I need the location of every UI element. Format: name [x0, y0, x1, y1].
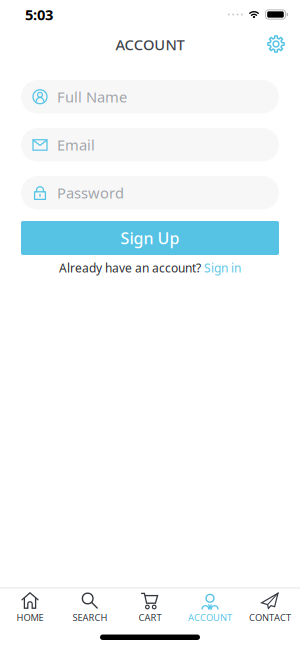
staticText: ACCOUNT [115, 35, 185, 54]
staticText: CONTACT [249, 611, 291, 624]
button[interactable]: HOME [0, 591, 60, 624]
button[interactable]: CONTACT [240, 591, 300, 624]
button[interactable]: ACCOUNT [180, 591, 240, 624]
staticText: SEARCH [72, 611, 107, 624]
staticText: Already have an account? [59, 260, 201, 276]
staticText: Sign in [204, 260, 241, 276]
button[interactable]: CART [120, 591, 180, 624]
staticText: 5:03 [25, 5, 53, 24]
button[interactable]: Settings [267, 35, 285, 53]
button[interactable]: Sign in [204, 260, 241, 276]
staticText: HOME [16, 611, 43, 624]
staticText: CART [138, 611, 161, 624]
staticText: ACCOUNT [188, 611, 232, 624]
staticText: Sign Up [120, 227, 179, 249]
staticText: Email [57, 135, 95, 154]
button[interactable]: SEARCH [60, 591, 120, 624]
staticText: Full Name [57, 87, 127, 106]
staticText: Password [57, 183, 124, 202]
button[interactable]: Sign Up [21, 221, 279, 255]
